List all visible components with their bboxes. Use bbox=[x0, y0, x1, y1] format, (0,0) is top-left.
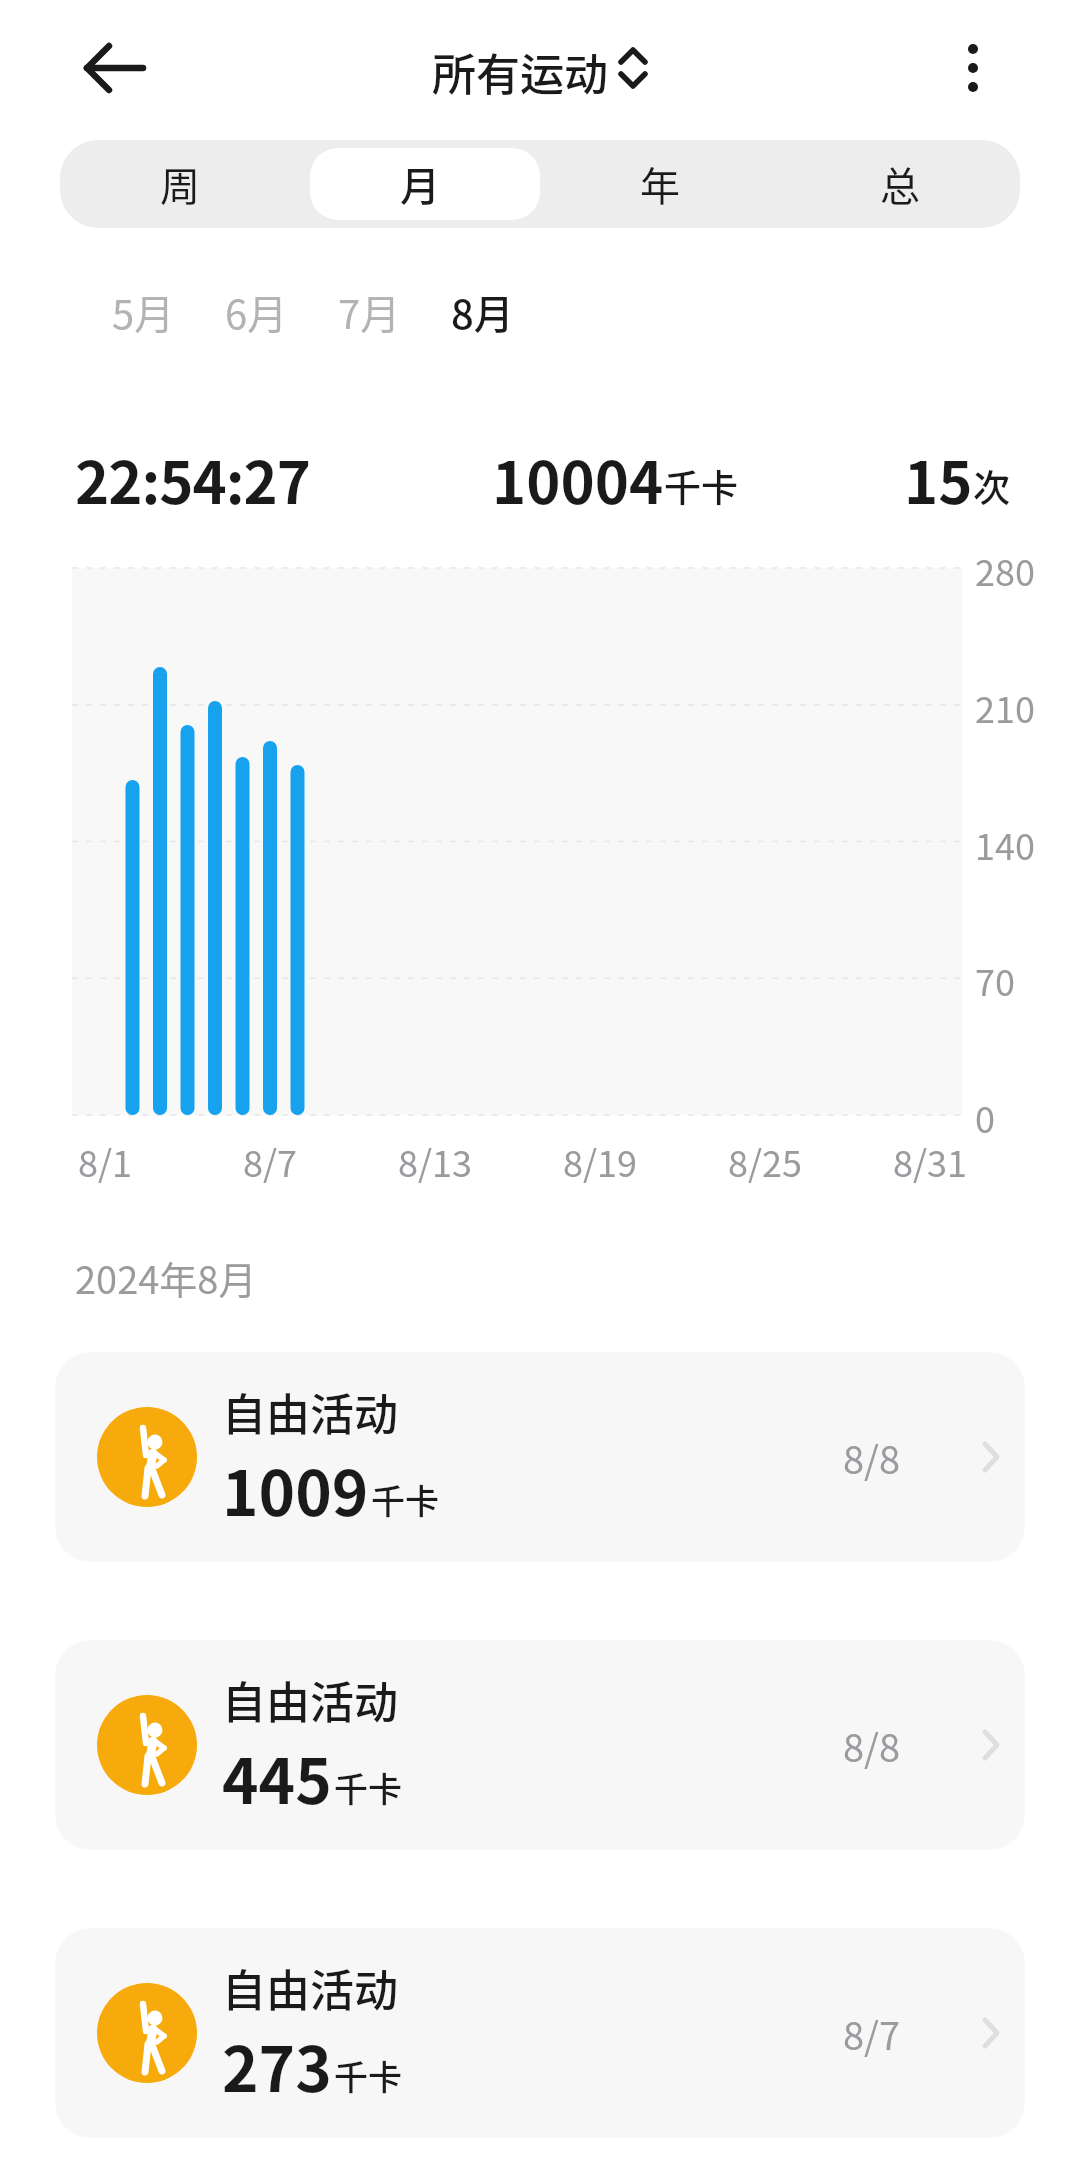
staticText: 8/7 bbox=[243, 1135, 298, 1187]
staticText: 自由活动 bbox=[222, 1668, 398, 1732]
button[interactable]: 月 bbox=[300, 140, 540, 228]
staticText: 0 bbox=[975, 1091, 995, 1143]
staticText: 140 bbox=[975, 818, 1035, 870]
staticText: 22:54:27 bbox=[75, 437, 311, 521]
staticText: 210 bbox=[975, 681, 1035, 733]
staticText: 周 bbox=[160, 155, 200, 213]
staticText: 千卡 bbox=[334, 1763, 402, 1812]
staticText: 千卡 bbox=[334, 2051, 402, 2100]
staticText: 8/25 bbox=[728, 1135, 803, 1187]
button[interactable]: 8月 bbox=[426, 282, 538, 342]
staticText: 8/1 bbox=[78, 1135, 133, 1187]
button[interactable]: 总 bbox=[780, 140, 1020, 228]
staticText: 千卡 bbox=[664, 459, 738, 513]
staticText: 总 bbox=[880, 155, 920, 213]
staticText: 280 bbox=[975, 544, 1035, 596]
staticText: 273 bbox=[222, 2020, 332, 2110]
staticText: 自由活动 bbox=[222, 1380, 398, 1444]
staticText: 70 bbox=[975, 954, 1015, 1006]
staticText: 8/19 bbox=[563, 1135, 638, 1187]
button[interactable]: 自由活动 bbox=[55, 1640, 1025, 1850]
staticText: 8/31 bbox=[893, 1135, 968, 1187]
staticText: 8月 bbox=[451, 283, 514, 341]
staticText: 2024年8月 bbox=[75, 1250, 257, 1305]
staticText: 6月 bbox=[225, 283, 288, 341]
button[interactable]: 所有运动 bbox=[0, 40, 1080, 96]
staticText: 所有运动 bbox=[432, 40, 608, 96]
staticText: 445 bbox=[222, 1732, 332, 1822]
button[interactable]: 自由活动 bbox=[55, 1928, 1025, 2138]
staticText: 8/13 bbox=[398, 1135, 473, 1187]
staticText: 年 bbox=[640, 155, 680, 213]
staticText: 8/8 bbox=[843, 1718, 901, 1773]
staticText: 次 bbox=[973, 459, 1010, 513]
staticText: 1009 bbox=[222, 1444, 369, 1534]
staticText: 自由活动 bbox=[222, 1956, 398, 2020]
button[interactable]: 年 bbox=[540, 140, 780, 228]
staticText: 8/8 bbox=[843, 1430, 901, 1485]
button[interactable]: 自由活动 bbox=[55, 1352, 1025, 1562]
button[interactable]: 6月 bbox=[200, 282, 312, 342]
staticText: 15 bbox=[904, 437, 973, 521]
staticText: 10004 bbox=[492, 437, 664, 521]
staticText: 5月 bbox=[112, 283, 175, 341]
staticText: 千卡 bbox=[371, 1475, 439, 1524]
button[interactable]: 周 bbox=[60, 140, 300, 228]
button[interactable] bbox=[75, 38, 155, 98]
button[interactable] bbox=[940, 38, 1006, 98]
staticText: 8/7 bbox=[843, 2006, 901, 2061]
staticText: 月 bbox=[400, 155, 440, 213]
staticText: 7月 bbox=[338, 283, 401, 341]
button[interactable]: 5月 bbox=[87, 282, 199, 342]
button[interactable]: 7月 bbox=[313, 282, 425, 342]
